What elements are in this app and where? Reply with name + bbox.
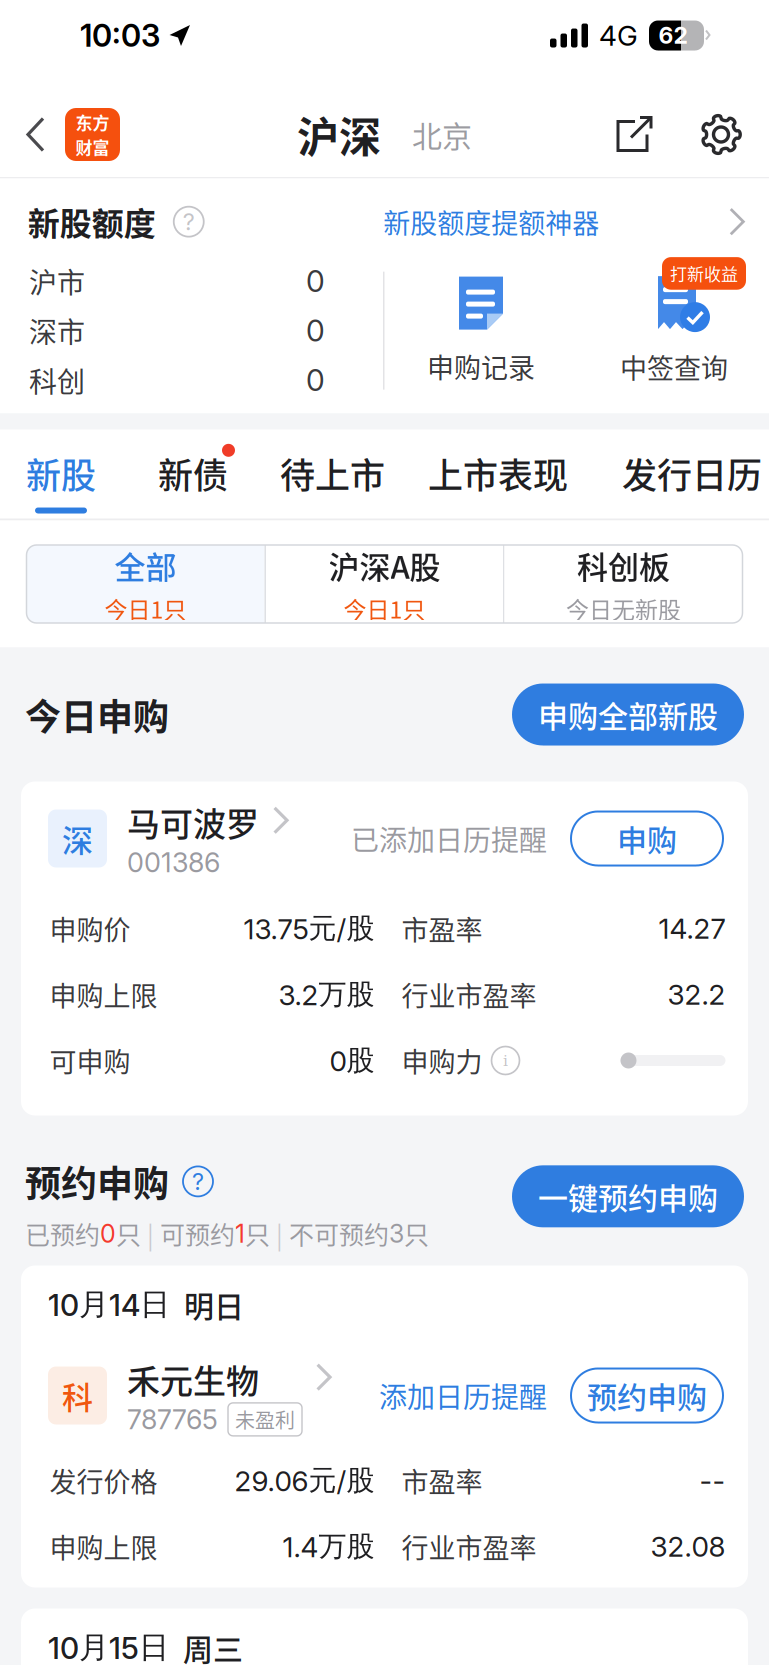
button[interactable]: 申购全部新股: [512, 683, 744, 745]
staticText: 禾元生物: [127, 1355, 259, 1403]
staticText: 中签查询: [620, 347, 728, 386]
button[interactable]: 禾元生物: [127, 1355, 332, 1436]
button[interactable]: 新股额度提额神器: [383, 202, 745, 241]
button[interactable]: 马可波罗: [127, 798, 289, 879]
staticText: 财富: [75, 134, 109, 159]
staticText: 沪市: [29, 261, 85, 301]
staticText: 申购力: [401, 1041, 482, 1080]
button[interactable]: 设置: [689, 87, 769, 182]
staticText: 0: [306, 263, 325, 299]
staticText: 沪深: [297, 104, 381, 165]
staticText: 申购价: [49, 909, 130, 948]
staticText: 申购上限: [49, 975, 157, 1014]
button[interactable]: 沪深: [297, 104, 381, 165]
staticText: 申购全部新股: [538, 693, 718, 736]
staticText: 787765: [127, 1403, 218, 1436]
staticText: 今日申购: [25, 688, 169, 740]
staticText: 3: [389, 1218, 404, 1249]
button[interactable]: 发行日历: [622, 448, 762, 513]
staticText: 只: [245, 1215, 270, 1252]
staticText: 明日: [184, 1283, 244, 1326]
staticText: 001386: [127, 846, 220, 879]
staticText: 深: [62, 816, 93, 861]
staticText: 14.27: [658, 912, 725, 945]
button[interactable]: 分享: [597, 87, 689, 182]
staticText: 申购记录: [427, 347, 535, 386]
button[interactable]: 沪深A股: [266, 545, 503, 623]
button[interactable]: 申购: [571, 811, 723, 865]
staticText: 只: [116, 1215, 141, 1252]
staticText: 预约申购: [25, 1155, 169, 1207]
staticText: 29.06元/股: [234, 1463, 374, 1498]
staticText: 周三: [183, 1626, 243, 1665]
button[interactable]: 科创板: [504, 545, 742, 623]
staticText: 行业市盈率: [401, 975, 536, 1014]
staticText: i: [503, 1051, 508, 1070]
button[interactable]: 一键预约申购: [512, 1165, 744, 1227]
staticText: 新股额度: [28, 198, 156, 245]
staticText: 市盈率: [401, 909, 482, 948]
staticText: 沪深A股: [328, 543, 440, 588]
staticText: 已预约: [25, 1215, 100, 1252]
staticText: 10月14日: [48, 1286, 170, 1323]
button[interactable]: 待上市: [280, 448, 385, 513]
staticText: 0: [100, 1218, 116, 1249]
staticText: 3.2万股: [278, 977, 374, 1012]
button[interactable]: 新债: [158, 448, 228, 513]
staticText: 新债: [158, 448, 228, 498]
staticText: 今日1只: [104, 592, 186, 625]
staticText: 深市: [29, 310, 85, 351]
button[interactable]: 预约申购: [571, 1368, 723, 1422]
staticText: 科创板: [577, 543, 670, 588]
staticText: 今日1只: [343, 592, 425, 625]
button[interactable]: 北京: [412, 113, 472, 156]
button[interactable]: 上市表现: [428, 448, 568, 513]
staticText: 申购上限: [49, 1527, 157, 1566]
staticText: 新股: [26, 448, 96, 498]
staticText: 发行价格: [49, 1461, 157, 1500]
staticText: 未盈利: [235, 1405, 295, 1434]
staticText: 预约申购: [587, 1374, 707, 1417]
staticText: |: [270, 1215, 289, 1252]
button[interactable]: 全部: [26, 545, 264, 623]
staticText: 全部: [114, 543, 176, 588]
staticText: 1: [235, 1218, 245, 1249]
staticText: 北京: [412, 113, 472, 156]
staticText: 科: [62, 1373, 93, 1418]
staticText: 今日无新股: [566, 592, 681, 625]
button[interactable]: 打新收益: [577, 275, 769, 386]
staticText: 上市表现: [428, 448, 568, 498]
staticText: 申购: [617, 817, 677, 860]
staticText: ?: [183, 207, 195, 236]
button[interactable]: 申购记录: [384, 276, 577, 386]
staticText: --: [699, 1464, 725, 1497]
staticText: 可申购: [49, 1041, 130, 1080]
staticText: 32.08: [650, 1530, 725, 1563]
staticText: 1.4万股: [282, 1529, 374, 1564]
button[interactable]: 添加日历提醒: [379, 1375, 547, 1416]
staticText: 只: [404, 1215, 429, 1252]
staticText: 0: [306, 312, 325, 349]
staticText: 东方: [75, 110, 109, 134]
staticText: 市盈率: [401, 1461, 482, 1500]
staticText: 0股: [329, 1043, 374, 1078]
staticText: 不可预约: [289, 1215, 389, 1252]
staticText: 待上市: [280, 448, 385, 498]
staticText: 行业市盈率: [401, 1527, 536, 1566]
staticText: 13.75元/股: [243, 911, 374, 946]
staticText: 打新收益: [670, 261, 738, 286]
button[interactable]: 返回: [0, 87, 128, 182]
staticText: |: [141, 1215, 160, 1252]
button[interactable]: 新股: [26, 448, 96, 513]
staticText: 0: [306, 362, 325, 398]
staticText: 添加日历提醒: [379, 1375, 547, 1416]
staticText: 一键预约申购: [538, 1175, 718, 1218]
staticText: 马可波罗: [127, 798, 259, 846]
staticText: 32.2: [667, 978, 725, 1011]
staticText: 发行日历: [622, 448, 762, 498]
staticText: 新股额度提额神器: [383, 202, 599, 241]
staticText: ?: [192, 1167, 204, 1195]
staticText: 4G: [599, 19, 638, 52]
staticText: 62: [658, 22, 687, 49]
staticText: 可预约: [160, 1215, 235, 1252]
